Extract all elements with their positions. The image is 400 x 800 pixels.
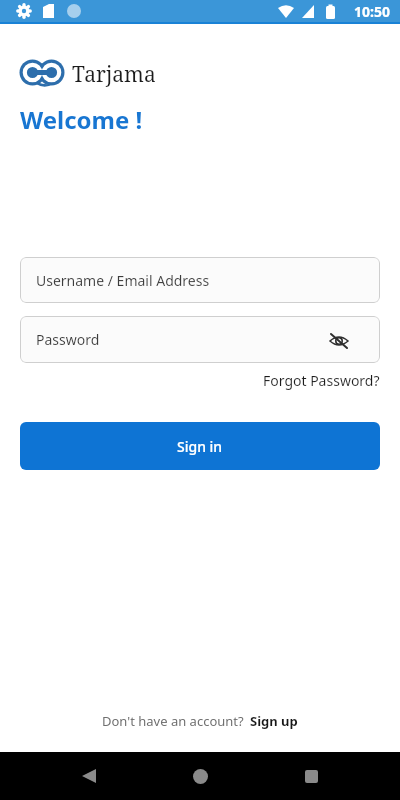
staticText: Username / Email Address [36, 271, 210, 290]
staticText: 10:50 [354, 2, 390, 21]
staticText: Password [36, 330, 100, 349]
button[interactable] [193, 769, 208, 784]
staticText: Sign up [250, 712, 298, 730]
button[interactable]: Username / Email Address [20, 257, 380, 303]
button[interactable]: Forgot Password? [263, 371, 380, 390]
button[interactable] [305, 770, 318, 783]
button[interactable]: Don't have an account? [102, 712, 298, 730]
staticText: Welcome ! [20, 103, 143, 136]
staticText: Don't have an account? [102, 712, 244, 730]
button[interactable]: Sign in [20, 422, 380, 470]
staticText: Sign in [177, 437, 223, 456]
button[interactable]: Password [20, 316, 380, 363]
staticText: Tarjama [72, 60, 156, 89]
button[interactable] [82, 769, 96, 783]
